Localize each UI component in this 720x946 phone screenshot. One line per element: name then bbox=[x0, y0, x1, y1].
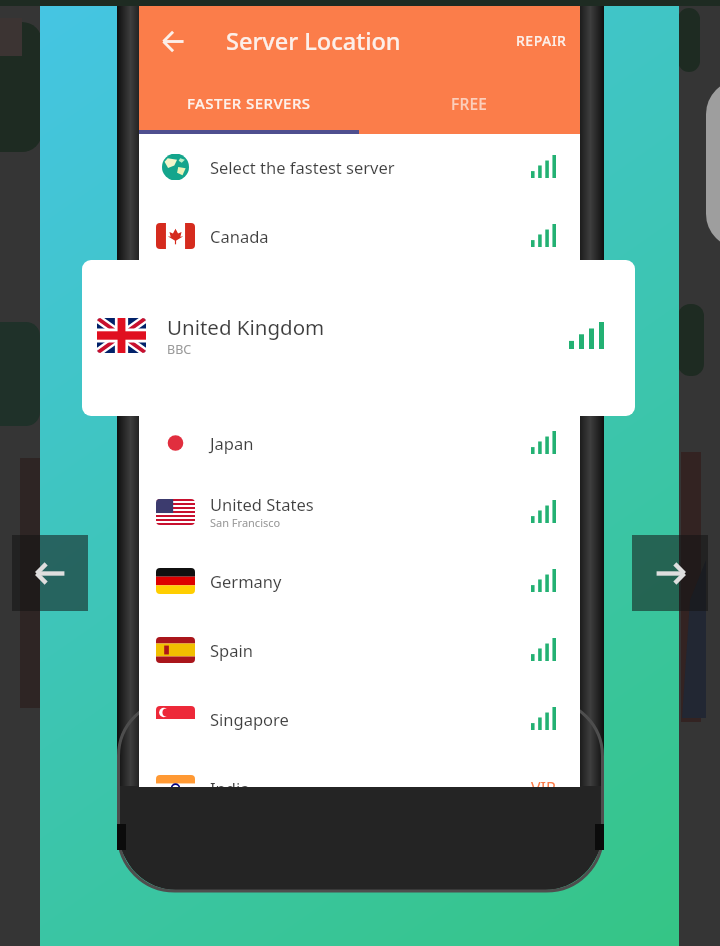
staticText: San Francisco bbox=[210, 515, 281, 530]
button[interactable]: REPAIR bbox=[516, 31, 567, 50]
button[interactable]: Netherlands bbox=[139, 339, 580, 408]
button[interactable]: India bbox=[139, 753, 580, 787]
staticText: BBC bbox=[210, 308, 232, 323]
staticText: Server Location bbox=[226, 25, 401, 57]
button[interactable]: United States bbox=[139, 477, 580, 546]
staticText: Japan bbox=[210, 432, 254, 454]
staticText: Spain bbox=[210, 639, 253, 661]
button[interactable]: Next bbox=[632, 535, 708, 611]
staticText: Germany bbox=[210, 570, 282, 592]
button[interactable]: Singapore bbox=[139, 684, 580, 753]
staticText: VIP bbox=[531, 777, 556, 787]
staticText: India bbox=[210, 777, 250, 787]
button[interactable]: Germany bbox=[139, 546, 580, 615]
button[interactable]: FREE bbox=[359, 78, 580, 128]
staticText: United States bbox=[210, 493, 314, 515]
button[interactable]: Japan bbox=[139, 408, 580, 477]
staticText: REPAIR bbox=[516, 31, 567, 50]
button[interactable]: United Kingdom bbox=[139, 270, 580, 339]
button[interactable]: Back bbox=[150, 18, 196, 64]
button[interactable]: Select the fastest server bbox=[139, 132, 580, 201]
staticText: FASTER SERVERS bbox=[187, 93, 311, 113]
staticText: FREE bbox=[451, 93, 488, 114]
button[interactable]: Previous bbox=[12, 535, 88, 611]
button[interactable]: Spain bbox=[139, 615, 580, 684]
staticText: United Kingdom bbox=[167, 313, 325, 341]
staticText: Select the fastest server bbox=[210, 156, 395, 178]
button[interactable]: United Kingdom bbox=[82, 260, 635, 416]
button[interactable]: FASTER SERVERS bbox=[139, 78, 359, 128]
button[interactable]: Canada bbox=[139, 201, 580, 270]
staticText: BBC bbox=[167, 341, 192, 358]
staticText: Singapore bbox=[210, 708, 289, 730]
staticText: Canada bbox=[210, 225, 269, 247]
